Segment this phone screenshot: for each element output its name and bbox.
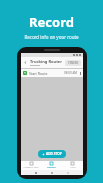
staticText: ADD STOP bbox=[46, 152, 62, 156]
button[interactable]: FINISH bbox=[65, 60, 81, 66]
staticText: Record bbox=[29, 13, 74, 31]
button[interactable]: Back bbox=[21, 57, 83, 68]
staticText: CHAT bbox=[70, 166, 76, 169]
button[interactable]: Back bbox=[23, 60, 28, 65]
staticText: Trucking Router bbox=[30, 59, 63, 64]
staticText: FINISH bbox=[68, 61, 79, 65]
button[interactable]: ROUTES bbox=[41, 161, 62, 170]
button[interactable]: CURRENT TRIP bbox=[21, 161, 41, 170]
staticText: CURRENT TRIP bbox=[23, 166, 39, 169]
button[interactable]: ADD STOP bbox=[38, 150, 66, 158]
staticText: Start Route bbox=[29, 71, 48, 76]
staticText: Record info on your route bbox=[24, 34, 79, 40]
button[interactable]: CHAT bbox=[62, 161, 83, 170]
staticText: 08:00 AM bbox=[64, 71, 78, 75]
button[interactable]: Start Route bbox=[21, 69, 83, 77]
staticText: ROUTES bbox=[47, 166, 56, 169]
